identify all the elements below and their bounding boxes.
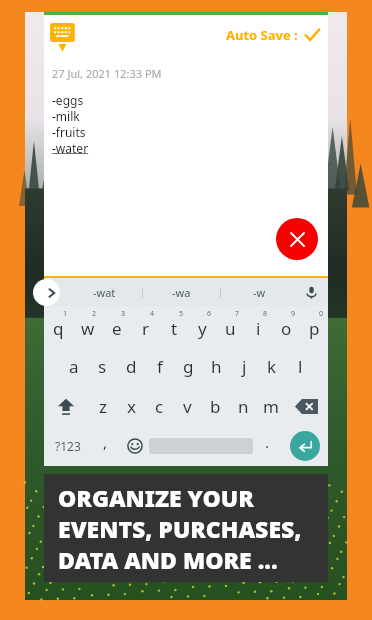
staticText: f <box>157 355 163 378</box>
staticText: k <box>267 355 277 378</box>
staticText: 27 Jul, 2021 12:33 PM <box>52 66 162 81</box>
button[interactable]: 9 <box>272 306 300 346</box>
button[interactable]: -w <box>221 278 298 306</box>
staticText: h <box>211 355 222 378</box>
staticText: 3 <box>121 309 126 319</box>
staticText: 0 <box>319 309 324 319</box>
button[interactable]: ?123 <box>44 426 91 466</box>
button[interactable]: g <box>174 346 202 386</box>
staticText: 2 <box>92 309 97 319</box>
staticText: r <box>142 317 150 340</box>
button[interactable]: c <box>145 386 173 426</box>
staticText: -wa <box>172 285 191 300</box>
button[interactable]: 2 <box>73 306 102 346</box>
staticText: -wat <box>93 285 116 300</box>
staticText: , <box>103 432 108 452</box>
button[interactable]: h <box>202 346 230 386</box>
staticText: o <box>281 317 292 340</box>
button[interactable]: 6 <box>188 306 216 346</box>
staticText: e <box>112 317 122 340</box>
button[interactable]: m <box>257 386 285 426</box>
staticText: EVENTS, PURCHASES, <box>58 513 302 544</box>
staticText: q <box>53 317 64 340</box>
staticText: ORGANIZE YOUR <box>58 482 254 513</box>
staticText: l <box>298 355 303 378</box>
button[interactable]: n <box>229 386 257 426</box>
button[interactable]: , <box>91 426 120 466</box>
button[interactable]: 1 <box>44 306 73 346</box>
staticText: s <box>98 355 107 378</box>
staticText: 8 <box>263 309 268 319</box>
staticText: t <box>171 317 178 340</box>
staticText: u <box>225 317 236 340</box>
button[interactable]: 0 <box>300 306 328 346</box>
staticText: . <box>265 432 270 452</box>
button[interactable]: Close <box>276 218 318 260</box>
staticText: y <box>198 317 207 340</box>
staticText: ?123 <box>55 438 81 454</box>
button[interactable]: 8 <box>244 306 272 346</box>
staticText: v <box>183 395 192 418</box>
staticText: -eggs <box>52 92 84 108</box>
button[interactable]: Voice input <box>298 278 324 306</box>
staticText: g <box>183 355 194 378</box>
staticText: c <box>155 395 164 418</box>
staticText: p <box>309 317 320 340</box>
staticText: 6 <box>207 309 212 319</box>
staticText: j <box>242 355 247 378</box>
staticText: b <box>210 395 221 418</box>
button[interactable]: x <box>117 386 145 426</box>
button[interactable]: z <box>88 386 117 426</box>
staticText: -w <box>253 285 266 300</box>
staticText: 1 <box>63 309 68 319</box>
button[interactable]: More suggestions <box>33 279 60 306</box>
button[interactable]: b <box>201 386 229 426</box>
staticText: z <box>99 395 107 418</box>
staticText: i <box>256 317 261 340</box>
staticText: 5 <box>179 309 184 319</box>
button[interactable]: Auto Save : <box>226 26 320 44</box>
button[interactable]: j <box>230 346 258 386</box>
staticText: 4 <box>150 309 155 319</box>
staticText: -fruits <box>52 124 86 140</box>
staticText: 7 <box>235 309 240 319</box>
button[interactable]: Hide keyboard <box>50 23 84 57</box>
button[interactable]: 5 <box>160 306 188 346</box>
staticText: a <box>69 355 79 378</box>
button[interactable]: 4 <box>131 306 160 346</box>
button[interactable]: a <box>59 346 88 386</box>
staticText: n <box>238 395 249 418</box>
button[interactable]: 3 <box>102 306 131 346</box>
button[interactable]: l <box>286 346 314 386</box>
button[interactable]: s <box>88 346 117 386</box>
button[interactable]: -wat <box>66 278 142 306</box>
button[interactable]: Emoji <box>120 426 149 466</box>
staticText: x <box>127 395 136 418</box>
button[interactable]: v <box>173 386 201 426</box>
staticText: 9 <box>291 309 296 319</box>
staticText: -milk <box>52 108 80 124</box>
staticText: w <box>81 317 95 340</box>
button[interactable]: Backspace <box>285 386 328 426</box>
button[interactable]: 7 <box>216 306 244 346</box>
staticText: m <box>263 395 279 418</box>
button[interactable]: Shift <box>44 386 88 426</box>
button[interactable]: f <box>146 346 174 386</box>
button[interactable]: . <box>253 426 282 466</box>
button[interactable]: Enter <box>290 431 320 461</box>
staticText: -water <box>52 140 89 156</box>
button[interactable]: d <box>117 346 146 386</box>
staticText: d <box>126 355 137 378</box>
button[interactable]: k <box>258 346 286 386</box>
button[interactable]: -wa <box>143 278 220 306</box>
staticText: Auto Save : <box>226 26 298 44</box>
staticText: DATA AND MORE ... <box>58 544 278 575</box>
